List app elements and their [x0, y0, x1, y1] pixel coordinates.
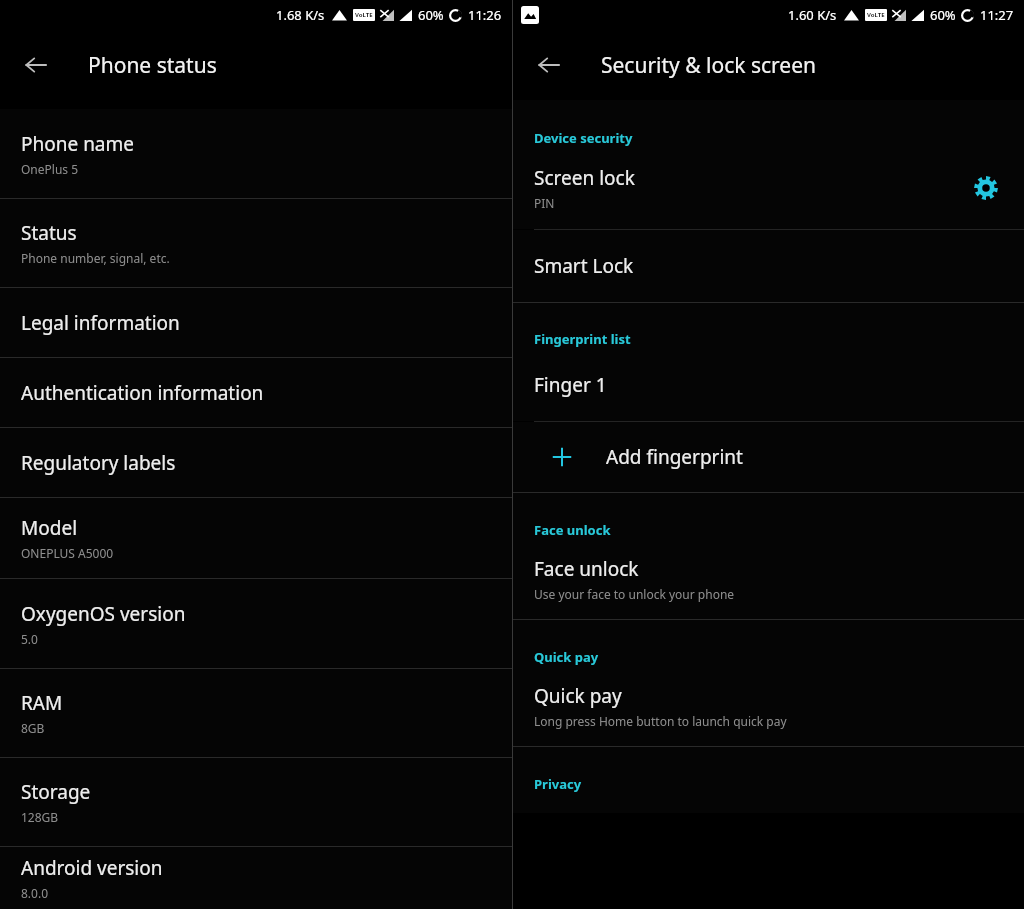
- staticText: OnePlus 5: [21, 161, 79, 177]
- staticText: Phone status: [88, 51, 217, 80]
- button[interactable]: OxygenOS version: [0, 579, 512, 668]
- staticText: Storage: [21, 779, 91, 805]
- staticText: Finger 1: [534, 372, 607, 398]
- button[interactable]: Add fingerprint: [513, 422, 1024, 492]
- button[interactable]: Storage: [0, 758, 512, 846]
- button[interactable]: Legal information: [0, 288, 512, 357]
- staticText: Long press Home button to launch quick p…: [534, 713, 787, 729]
- staticText: OxygenOS version: [21, 601, 186, 627]
- button[interactable]: Screen lock: [513, 147, 1024, 229]
- staticText: 1.60 K/s: [788, 6, 837, 24]
- staticText: 60%: [930, 6, 956, 24]
- staticText: 11:27: [980, 6, 1014, 24]
- button[interactable]: Smart Lock: [513, 230, 1024, 302]
- staticText: Phone name: [21, 131, 135, 157]
- button[interactable]: Android version: [0, 847, 512, 909]
- staticText: Fingerprint list: [534, 330, 631, 348]
- staticText: Regulatory labels: [21, 450, 176, 476]
- staticText: VoLTE: [867, 11, 885, 19]
- staticText: RAM: [21, 690, 63, 716]
- staticText: Privacy: [534, 775, 582, 793]
- staticText: Quick pay: [534, 683, 622, 709]
- staticText: Face unlock: [534, 521, 611, 539]
- button[interactable]: Back: [14, 43, 58, 87]
- staticText: 11:26: [468, 6, 502, 24]
- staticText: Android version: [21, 855, 163, 881]
- button[interactable]: Model: [0, 498, 512, 578]
- staticText: 8.0.0: [21, 885, 49, 901]
- staticText: Authentication information: [21, 380, 264, 406]
- staticText: ONEPLUS A5000: [21, 545, 114, 561]
- staticText: 60%: [418, 6, 444, 24]
- staticText: Quick pay: [534, 648, 599, 666]
- staticText: 1.68 K/s: [276, 6, 325, 24]
- staticText: Face unlock: [534, 556, 639, 582]
- staticText: Smart Lock: [534, 253, 634, 279]
- staticText: Status: [21, 220, 77, 246]
- staticText: PIN: [534, 195, 555, 211]
- button[interactable]: Finger 1: [513, 348, 1024, 421]
- button[interactable]: Phone name: [0, 109, 512, 198]
- button[interactable]: Quick pay: [513, 666, 1024, 746]
- staticText: Phone number, signal, etc.: [21, 250, 170, 266]
- staticText: Use your face to unlock your phone: [534, 586, 735, 602]
- staticText: Screen lock: [534, 165, 635, 191]
- staticText: 128GB: [21, 809, 59, 825]
- button[interactable]: Status: [0, 199, 512, 287]
- button[interactable]: Face unlock: [513, 539, 1024, 619]
- button[interactable]: Screen lock settings: [966, 168, 1006, 208]
- staticText: VoLTE: [355, 11, 373, 19]
- staticText: Device security: [534, 129, 633, 147]
- staticText: Add fingerprint: [606, 444, 743, 470]
- button[interactable]: RAM: [0, 669, 512, 757]
- button[interactable]: Back: [527, 43, 571, 87]
- button[interactable]: Authentication information: [0, 358, 512, 427]
- staticText: 8GB: [21, 720, 45, 736]
- staticText: 5.0: [21, 631, 38, 647]
- staticText: Security & lock screen: [601, 51, 817, 80]
- staticText: Legal information: [21, 310, 180, 336]
- staticText: Model: [21, 515, 78, 541]
- button[interactable]: Regulatory labels: [0, 428, 512, 497]
